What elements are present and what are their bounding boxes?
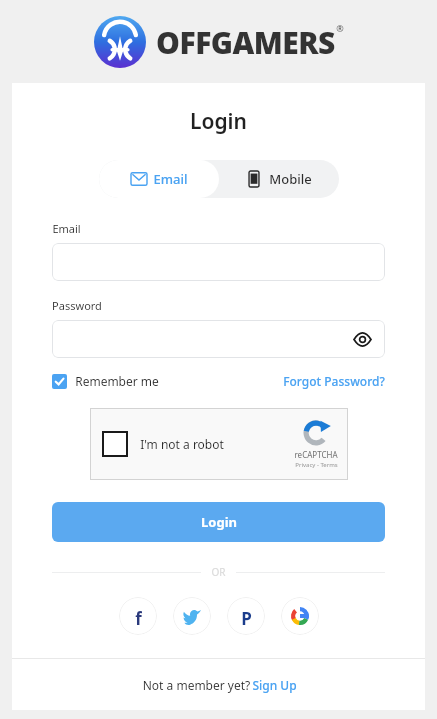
staticText: Login: [201, 513, 237, 531]
button[interactable]: Mobile: [219, 160, 339, 198]
staticText: Sign Up: [252, 677, 297, 693]
staticText: Email: [52, 221, 81, 236]
staticText: P: [241, 607, 252, 625]
staticText: reCAPTCHA: [294, 449, 338, 460]
staticText: I'm not a robot: [140, 436, 224, 452]
button[interactable]: Sign in with Twitter: [173, 597, 211, 635]
button[interactable]: [52, 243, 385, 281]
button[interactable]: Login: [52, 502, 385, 542]
button[interactable]: I'm not a robot checkbox: [90, 408, 348, 480]
button[interactable]: Sign in with Google: [281, 597, 319, 635]
button[interactable]: Not a member yet?: [12, 659, 425, 710]
button[interactable]: Show password: [351, 328, 373, 350]
button[interactable]: Forgot Password?: [283, 373, 385, 389]
staticText: OR: [211, 565, 226, 579]
button[interactable]: I'm not a robot checkbox: [102, 431, 128, 457]
staticText: Login: [190, 107, 247, 136]
staticText: Email: [153, 170, 188, 188]
staticText: Not a member yet?: [141, 677, 252, 693]
staticText: Remember me: [75, 373, 159, 389]
staticText: Forgot Password?: [283, 373, 385, 389]
staticText: OFFGAMERS: [156, 22, 335, 63]
button[interactable]: Remember me: [52, 373, 159, 389]
staticText: f: [135, 607, 142, 625]
button[interactable]: Sign in with Facebook: [119, 597, 157, 635]
staticText: ®: [336, 22, 344, 34]
staticText: Privacy - Terms: [295, 461, 338, 469]
button[interactable]: Show password: [52, 320, 385, 358]
staticText: Mobile: [269, 170, 312, 188]
button[interactable]: Sign in with PayPal: [227, 597, 265, 635]
button[interactable]: Email: [99, 160, 219, 198]
staticText: Password: [52, 298, 102, 313]
